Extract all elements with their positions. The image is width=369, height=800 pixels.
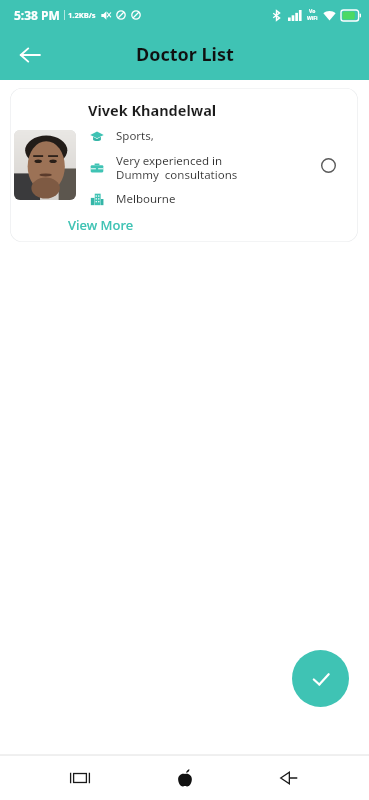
staticText: Doctor List xyxy=(136,42,234,67)
staticText: Vivek Khandelwal xyxy=(88,100,217,120)
button[interactable]: Recents xyxy=(56,755,104,800)
staticText: WiFi xyxy=(307,15,318,22)
staticText: Sports, xyxy=(116,128,154,144)
button[interactable]: View More xyxy=(66,215,136,235)
button[interactable]: Back xyxy=(265,755,313,800)
button[interactable]: Vivek Khandelwal xyxy=(10,88,358,242)
staticText: 5:38 PM xyxy=(14,7,60,23)
staticText: Vo xyxy=(309,8,316,15)
button[interactable]: Back xyxy=(8,33,52,77)
staticText: 1.2KB/s xyxy=(68,10,96,20)
button[interactable]: Select doctor xyxy=(308,145,348,185)
button[interactable]: Home xyxy=(161,755,209,800)
staticText: View More xyxy=(68,216,134,234)
button[interactable]: Confirm xyxy=(292,650,349,707)
staticText: Very experienced in Dummy consultations xyxy=(116,153,238,182)
staticText: Melbourne xyxy=(116,191,176,207)
